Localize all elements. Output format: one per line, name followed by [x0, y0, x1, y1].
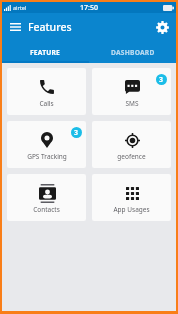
staticText: GPS Tracking [27, 152, 67, 161]
button[interactable]: Settings [148, 13, 176, 41]
staticText: airtel [13, 4, 27, 11]
staticText: App Usages [113, 205, 150, 214]
staticText: 3 [74, 128, 79, 138]
button[interactable]: Contacts [7, 174, 86, 221]
button[interactable]: GPS Tracking [7, 121, 86, 168]
button[interactable]: FEATURE [2, 41, 89, 63]
staticText: Features [28, 20, 72, 34]
button[interactable]: Open navigation menu [2, 13, 28, 41]
button[interactable]: App Usages [92, 174, 171, 221]
staticText: DASHBOARD [111, 48, 155, 57]
staticText: 17:50 [80, 3, 98, 13]
staticText: geofence [117, 152, 146, 161]
staticText: 3 [159, 75, 164, 85]
staticText: FEATURE [30, 48, 61, 57]
staticText: Contacts [33, 205, 60, 214]
button[interactable]: Calls [7, 68, 86, 115]
button[interactable]: geofence [92, 121, 171, 168]
button[interactable]: SMS [92, 68, 171, 115]
button[interactable]: DASHBOARD [89, 41, 176, 63]
staticText: SMS [125, 99, 139, 108]
staticText: Calls [39, 99, 54, 108]
